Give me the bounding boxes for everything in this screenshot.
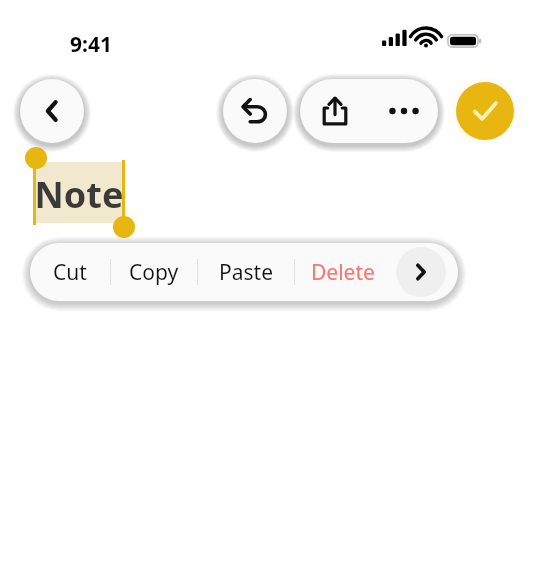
button[interactable]: Delete [295, 243, 391, 301]
button[interactable]: Selection end handle [113, 216, 135, 238]
staticText: Note [34, 170, 124, 219]
staticText: 9:41 [70, 30, 112, 59]
button[interactable]: Back [20, 79, 84, 143]
staticText: Copy [129, 258, 179, 287]
button[interactable]: Share [300, 79, 369, 143]
staticText: Cut [53, 258, 87, 287]
button[interactable]: Cut [30, 243, 110, 301]
button[interactable]: More options [369, 79, 438, 143]
button[interactable]: Done [456, 82, 514, 140]
staticText: Paste [219, 258, 273, 287]
button[interactable]: More actions [392, 243, 450, 301]
button[interactable]: Paste [198, 243, 294, 301]
button[interactable]: Selection start handle [25, 147, 47, 169]
staticText: Delete [311, 258, 375, 287]
button[interactable]: Undo [223, 79, 287, 143]
button[interactable]: Copy [111, 243, 197, 301]
